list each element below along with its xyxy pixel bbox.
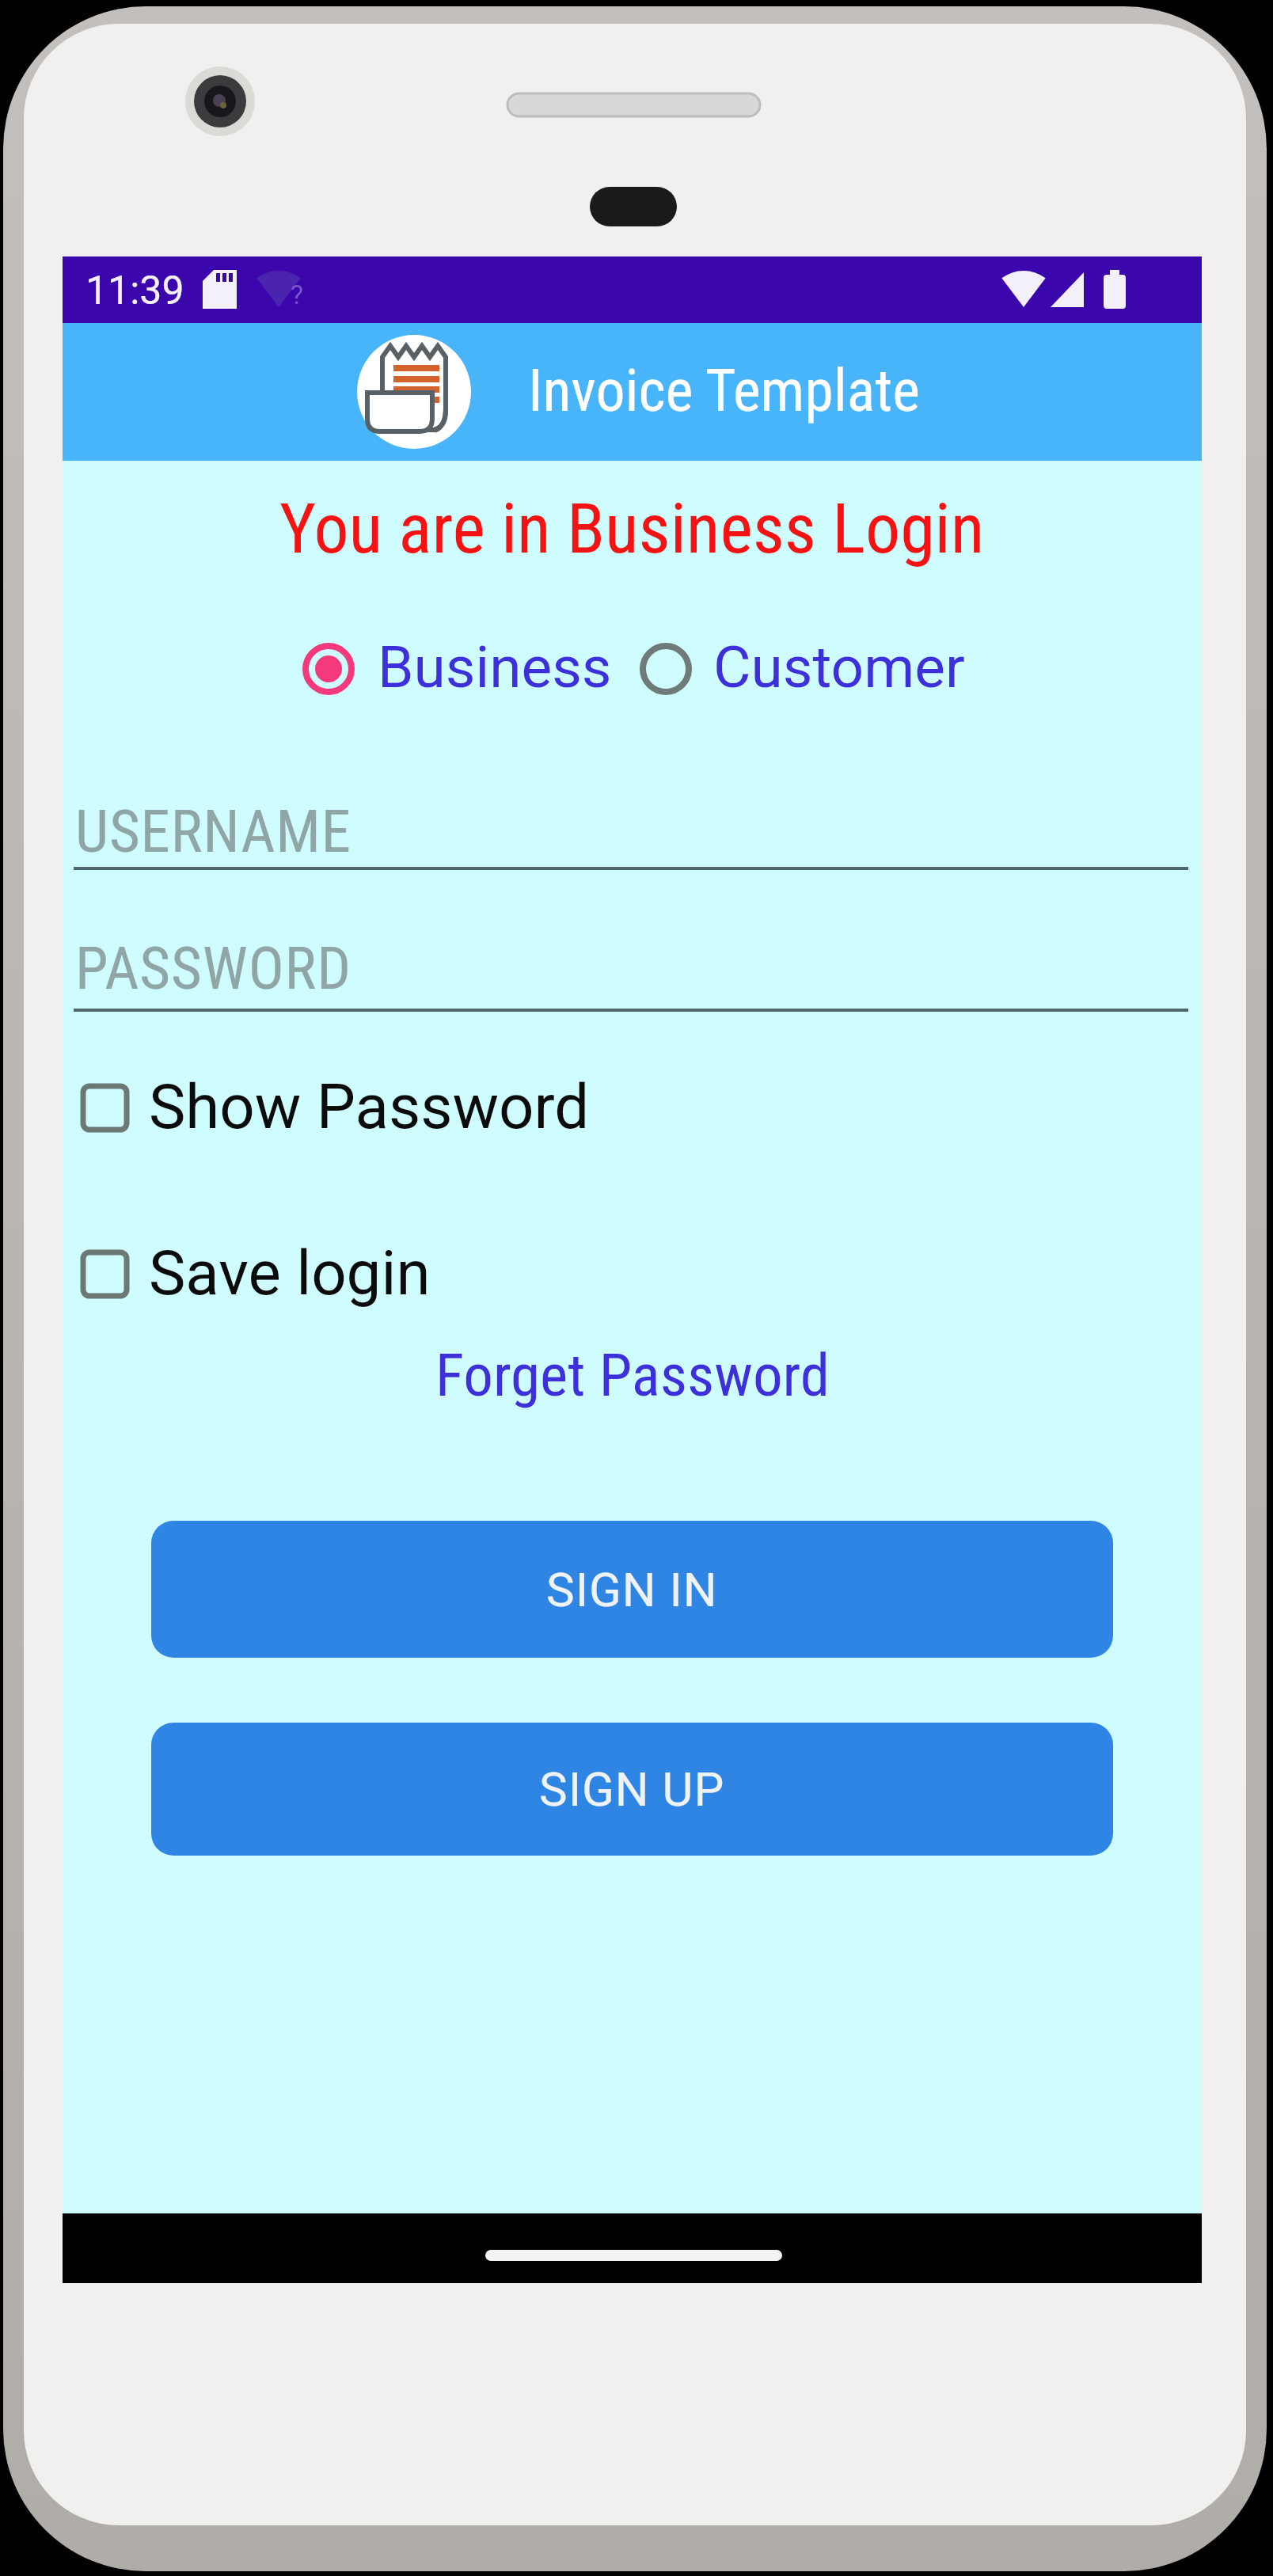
staticText: ? bbox=[291, 279, 304, 310]
staticText: Customer bbox=[713, 633, 965, 698]
staticText: Forget Password bbox=[435, 1340, 830, 1410]
staticText: 11:39 bbox=[85, 268, 184, 314]
button[interactable]: Forget Password bbox=[435, 1340, 830, 1410]
staticText: Show Password bbox=[149, 1071, 590, 1143]
staticText: SIGN IN bbox=[546, 1562, 718, 1617]
staticText: Invoice Template bbox=[528, 356, 920, 425]
staticText: Save login bbox=[149, 1237, 431, 1309]
button[interactable]: PASSWORD bbox=[74, 916, 1188, 1008]
button[interactable]: SIGN UP bbox=[151, 1723, 1113, 1856]
staticText: You are in Business Login bbox=[279, 488, 985, 569]
staticText: USERNAME bbox=[75, 796, 351, 866]
button[interactable]: SIGN IN bbox=[151, 1521, 1113, 1658]
button[interactable]: Save login bbox=[81, 1234, 682, 1313]
button[interactable]: USERNAME bbox=[74, 779, 1188, 871]
button[interactable]: Customer bbox=[640, 630, 1035, 695]
staticText: SIGN UP bbox=[539, 1761, 725, 1817]
button[interactable]: Business bbox=[302, 630, 627, 695]
staticText: PASSWORD bbox=[75, 933, 351, 1003]
staticText: Business bbox=[378, 633, 612, 698]
button[interactable]: Show Password bbox=[81, 1068, 682, 1147]
